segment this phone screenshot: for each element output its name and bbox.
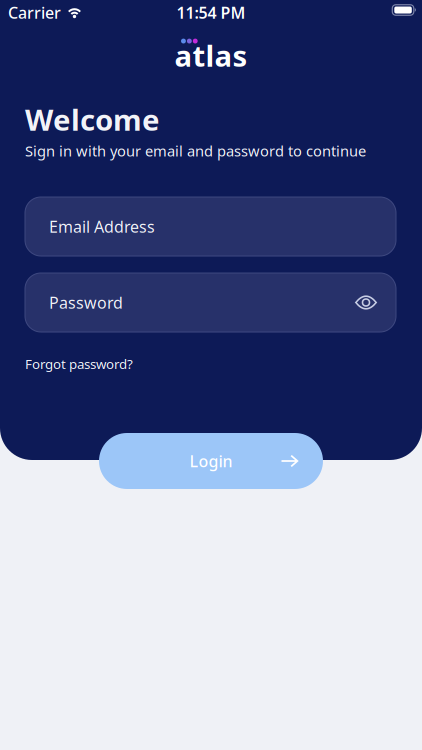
staticText: Login <box>189 450 232 472</box>
button[interactable]: Email Address <box>25 197 396 256</box>
staticText: 11:54 PM <box>176 2 245 23</box>
staticText: Sign in with your email and password to … <box>25 141 366 160</box>
staticText: Carrier <box>8 2 61 23</box>
staticText: Email Address <box>49 216 155 237</box>
staticText: Password <box>49 292 123 313</box>
staticText: Welcome <box>25 100 160 139</box>
staticText: Forgot password? <box>25 355 133 373</box>
button[interactable]: Forgot password? <box>25 355 133 373</box>
button[interactable]: Password <box>25 273 396 332</box>
button[interactable]: Login <box>99 433 323 489</box>
staticText: atlas <box>174 36 247 75</box>
